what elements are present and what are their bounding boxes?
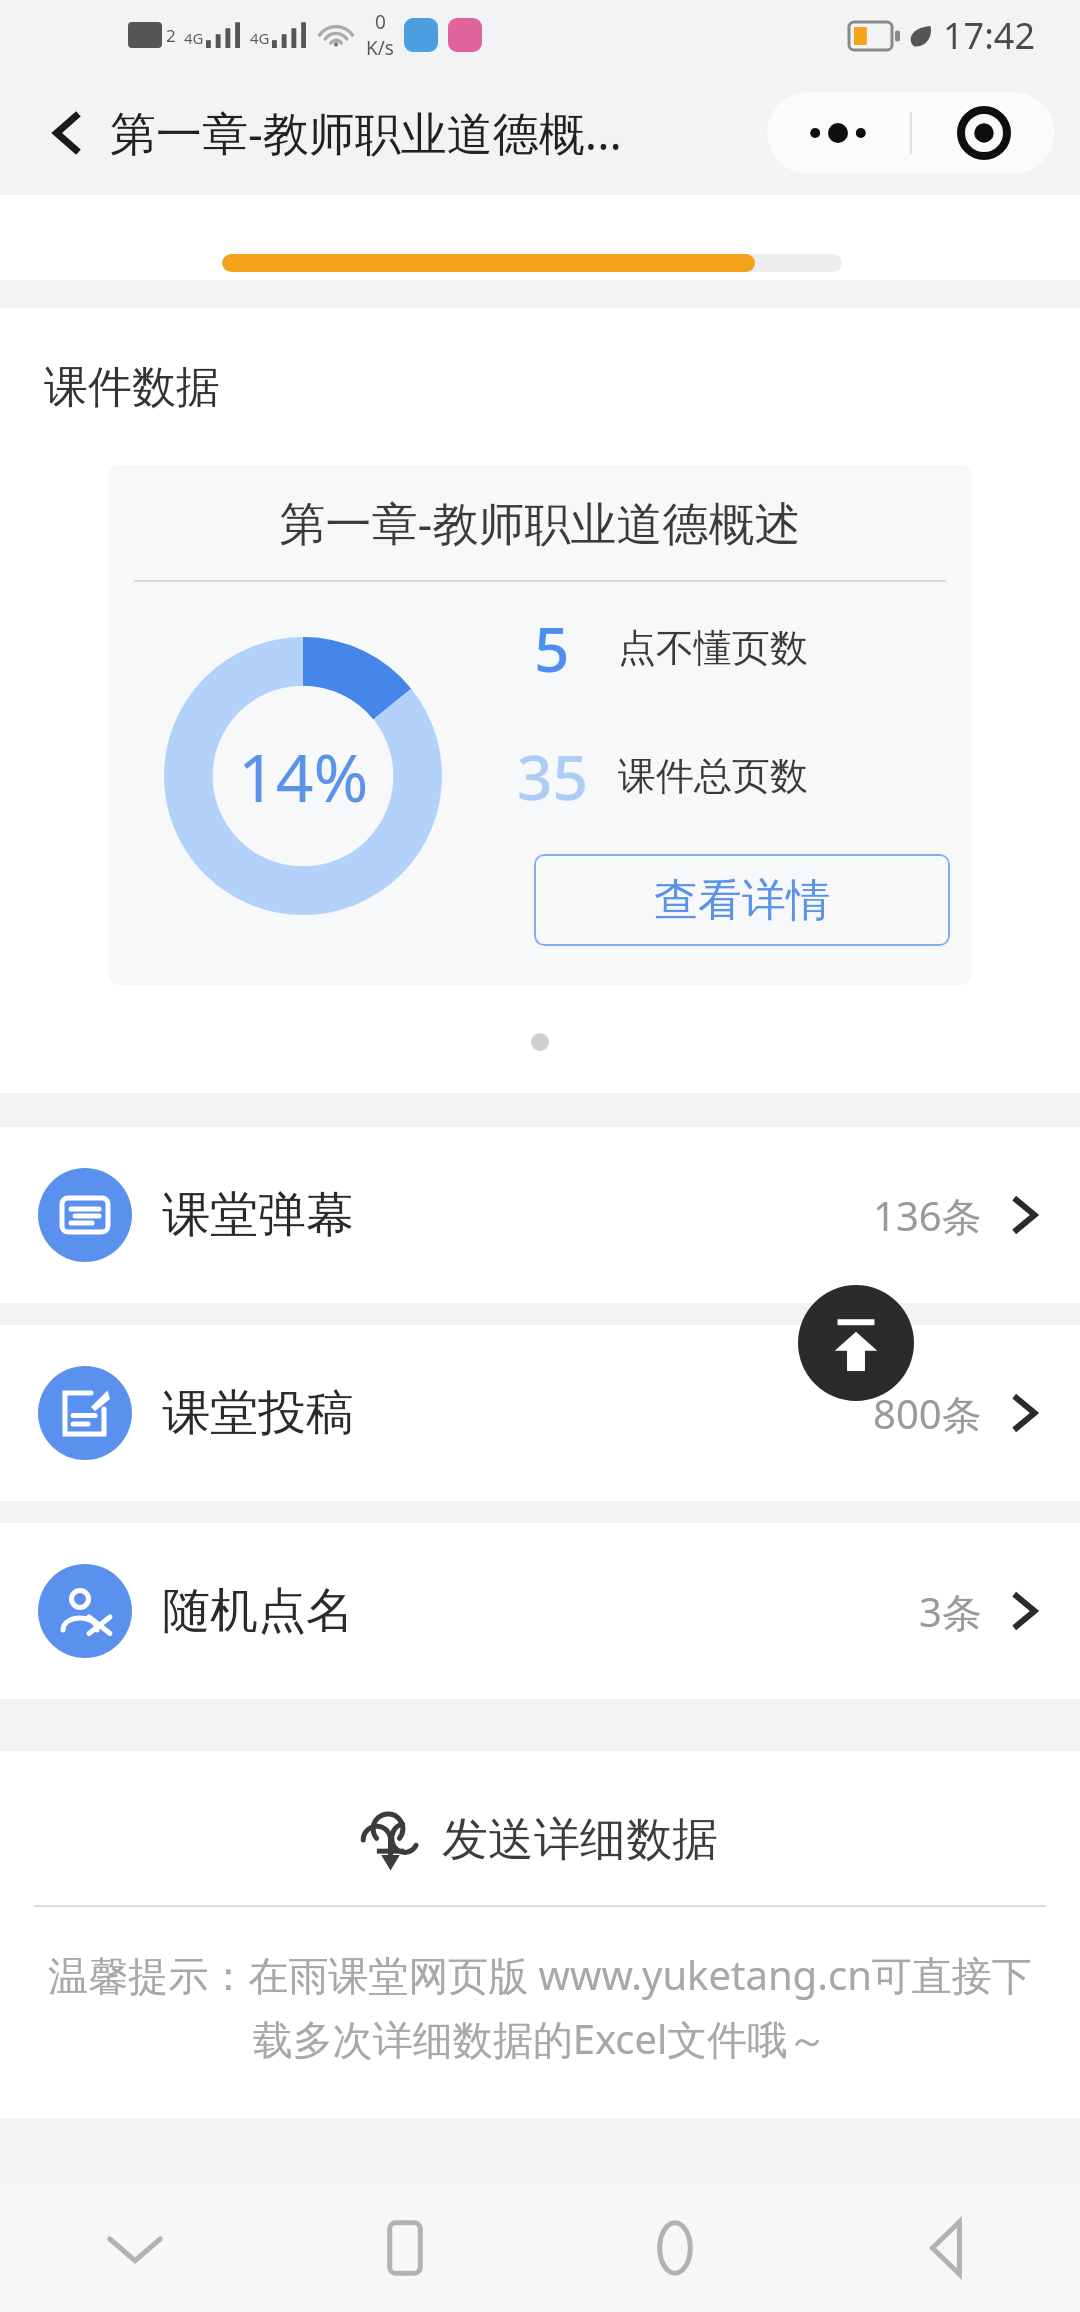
- staticText: 14%: [238, 731, 369, 821]
- button[interactable]: 随机点名: [0, 1523, 1080, 1699]
- button[interactable]: 课堂投稿: [0, 1325, 1080, 1501]
- staticText: 课件数据: [44, 360, 220, 415]
- button[interactable]: Home: [540, 2184, 810, 2312]
- button[interactable]: Close: [912, 91, 1056, 175]
- staticText: 课堂投稿: [162, 1383, 354, 1443]
- staticText: 4G: [250, 28, 270, 48]
- button[interactable]: Back: [810, 2184, 1080, 2312]
- staticText: 查看详情: [654, 873, 830, 928]
- button[interactable]: 课堂弹幕: [0, 1127, 1080, 1303]
- staticText: 第一章-教师职业道德概...: [110, 101, 622, 164]
- staticText: 2: [166, 24, 176, 47]
- staticText: 4G: [184, 28, 204, 48]
- button[interactable]: Scroll to top: [798, 1285, 914, 1401]
- staticText: 点不懂页数: [618, 624, 808, 672]
- button[interactable]: Hide keyboard: [0, 2184, 270, 2312]
- staticText: 温馨提示：在雨课堂网页版 www.yuketang.cn可直接下载多次详细数据的…: [38, 1947, 1042, 2066]
- staticText: 17:42: [943, 11, 1036, 60]
- staticText: 第一章-教师职业道德概述: [108, 491, 972, 554]
- button[interactable]: Recents: [270, 2184, 540, 2312]
- staticText: K/s: [366, 35, 394, 61]
- staticText: 发送详细数据: [442, 1811, 718, 1869]
- button[interactable]: 查看详情: [534, 854, 950, 946]
- staticText: 课堂弹幕: [162, 1185, 354, 1245]
- staticText: 800条: [873, 1386, 982, 1441]
- staticText: 136条: [873, 1188, 982, 1243]
- staticText: 35: [517, 734, 588, 818]
- staticText: 课件总页数: [618, 752, 808, 800]
- staticText: 3条: [919, 1584, 982, 1639]
- staticText: 随机点名: [162, 1581, 354, 1641]
- staticText: 5: [534, 606, 570, 690]
- button[interactable]: More: [766, 91, 910, 175]
- button[interactable]: Back: [22, 88, 112, 178]
- staticText: 0: [375, 9, 386, 35]
- button[interactable]: 发送详细数据: [0, 1791, 1080, 1889]
